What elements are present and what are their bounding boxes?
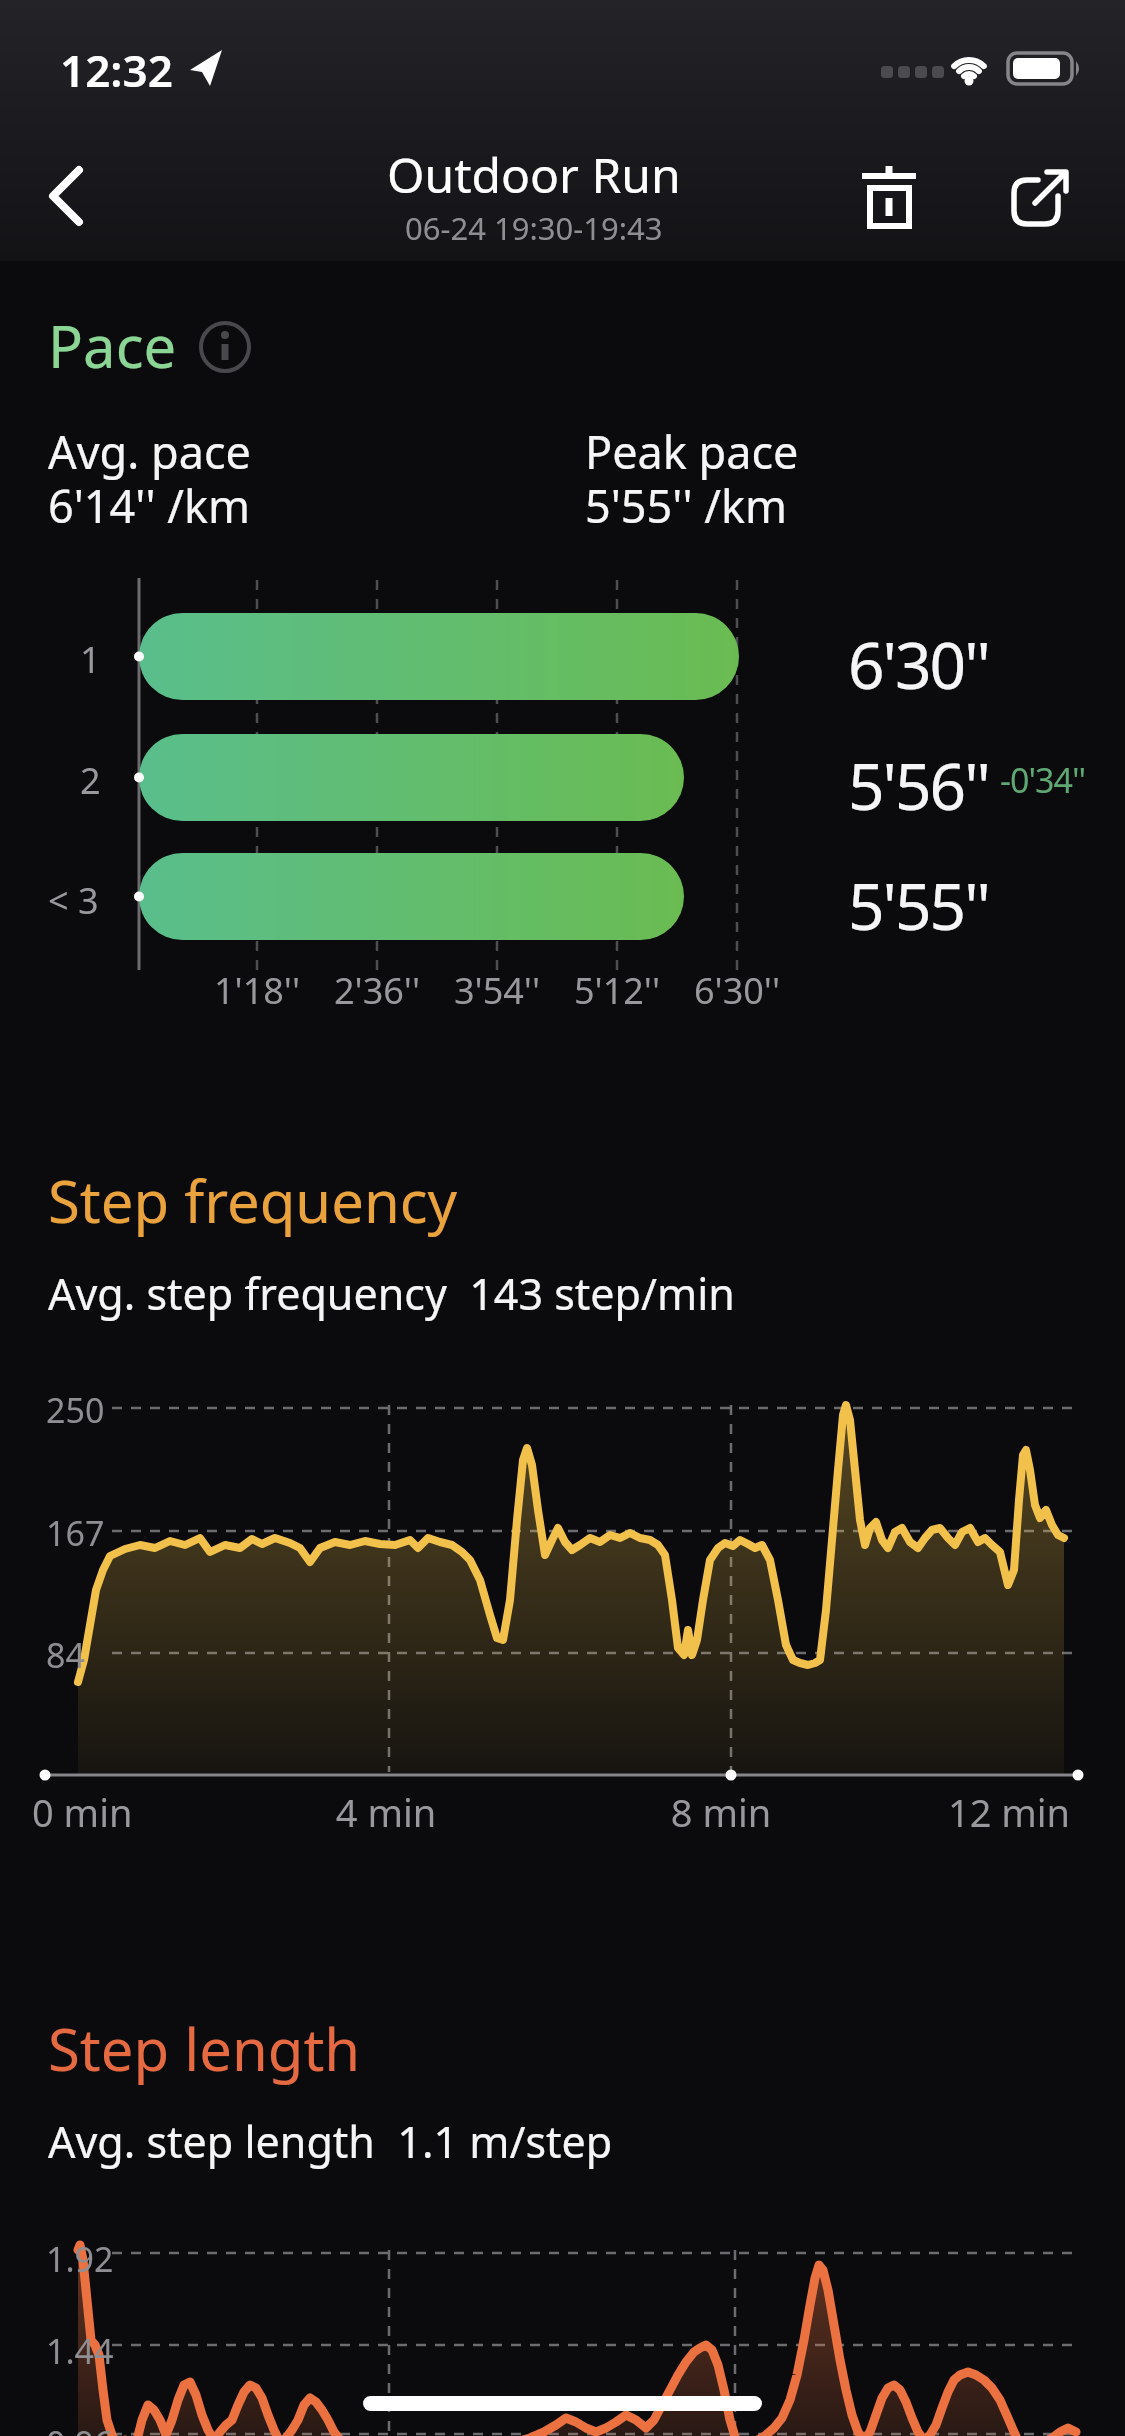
staticText: 84	[46, 1632, 85, 1678]
staticText: Avg. step length 1.1 m/step	[48, 2112, 613, 2171]
staticText: 250	[46, 1387, 105, 1433]
staticText: Avg. pace	[48, 421, 251, 482]
staticText: 6'30''	[637, 966, 837, 1015]
staticText: 1.44	[46, 2328, 114, 2374]
staticText: 5'12''	[517, 966, 717, 1015]
staticText: 167	[46, 1510, 105, 1556]
staticText: < 3	[48, 876, 99, 925]
staticText: 1'18''	[157, 966, 357, 1015]
staticText: Peak pace	[585, 421, 799, 482]
staticText: 12 min	[909, 1786, 1109, 1838]
staticText: Outdoor Run	[387, 142, 681, 207]
staticText: 1.92	[46, 2236, 114, 2282]
staticText: Pace	[48, 306, 177, 385]
staticText: Step length	[48, 2009, 361, 2088]
staticText: 5'55'' /km	[585, 475, 788, 536]
staticText: 0.96	[46, 2420, 114, 2436]
staticText: Avg. step frequency 143 step/min	[48, 1264, 735, 1323]
staticText: 2'36''	[277, 966, 477, 1015]
staticText: 3'54''	[397, 966, 597, 1015]
staticText: 8 min	[621, 1786, 821, 1838]
staticText: -0'34''	[1000, 757, 1086, 803]
staticText: 0 min	[32, 1786, 133, 1838]
staticText: 6'30''	[848, 621, 990, 708]
staticText: 1	[80, 635, 101, 684]
staticText: 6'14'' /km	[48, 475, 251, 536]
staticText: 06-24 19:30-19:43	[405, 207, 663, 249]
staticText: 2	[80, 756, 101, 805]
staticText: 5'55''	[848, 862, 990, 949]
button[interactable]	[986, 142, 1092, 246]
staticText: 4 min	[286, 1786, 486, 1838]
staticText: 12:32	[60, 40, 173, 100]
button[interactable]	[196, 318, 254, 376]
button[interactable]	[18, 146, 108, 246]
button[interactable]	[836, 142, 942, 246]
staticText: 5'56''	[848, 742, 990, 829]
staticText: Step frequency	[48, 1161, 458, 1240]
